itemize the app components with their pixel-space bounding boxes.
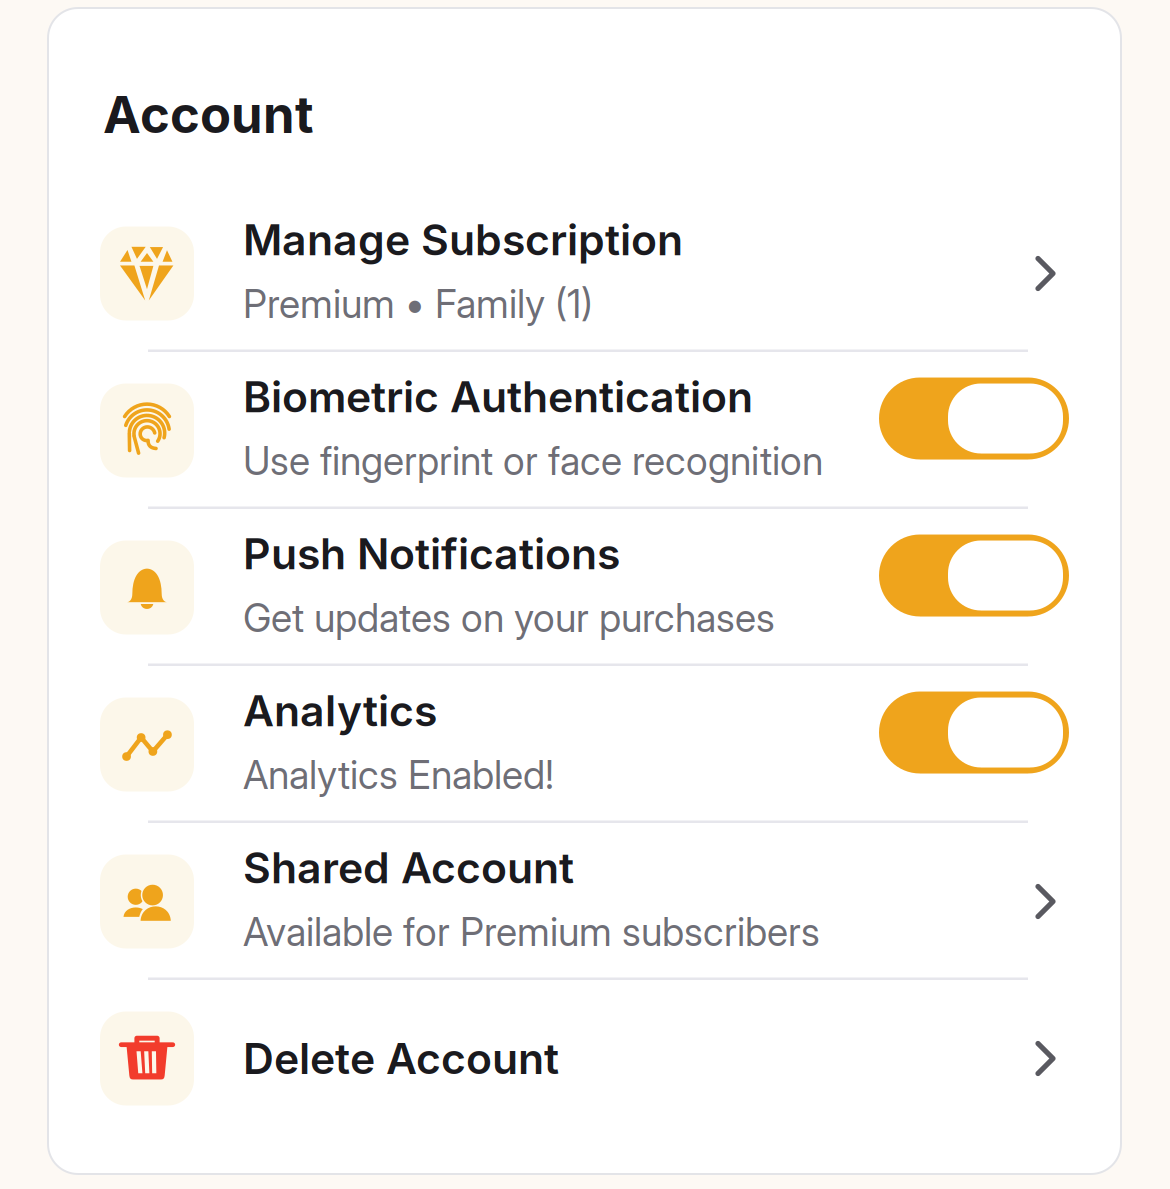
button[interactable]: Push Notifications (879, 546, 1069, 628)
button[interactable]: Analytics (879, 703, 1069, 785)
staticText: Delete Account (243, 1033, 559, 1084)
staticText: Analytics Enabled! (243, 751, 554, 798)
button[interactable]: Biometric Authentication (879, 389, 1069, 471)
button[interactable]: Manage Subscription (48, 195, 1121, 352)
staticText: Use fingerprint or face recognition (243, 437, 823, 484)
staticText: Premium • Family (1) (243, 280, 593, 327)
button[interactable]: Delete Account (48, 980, 1121, 1137)
staticText: Biometric Authentication (243, 371, 753, 422)
staticText: Manage Subscription (243, 214, 683, 265)
staticText: Available for Premium subscribers (243, 908, 820, 955)
staticText: Get updates on your purchases (243, 594, 775, 641)
staticText: Push Notifications (243, 528, 620, 579)
button[interactable]: Shared Account (48, 823, 1121, 980)
staticText: Shared Account (243, 842, 574, 893)
staticText: Analytics (243, 685, 437, 736)
staticText: Account (103, 84, 314, 145)
